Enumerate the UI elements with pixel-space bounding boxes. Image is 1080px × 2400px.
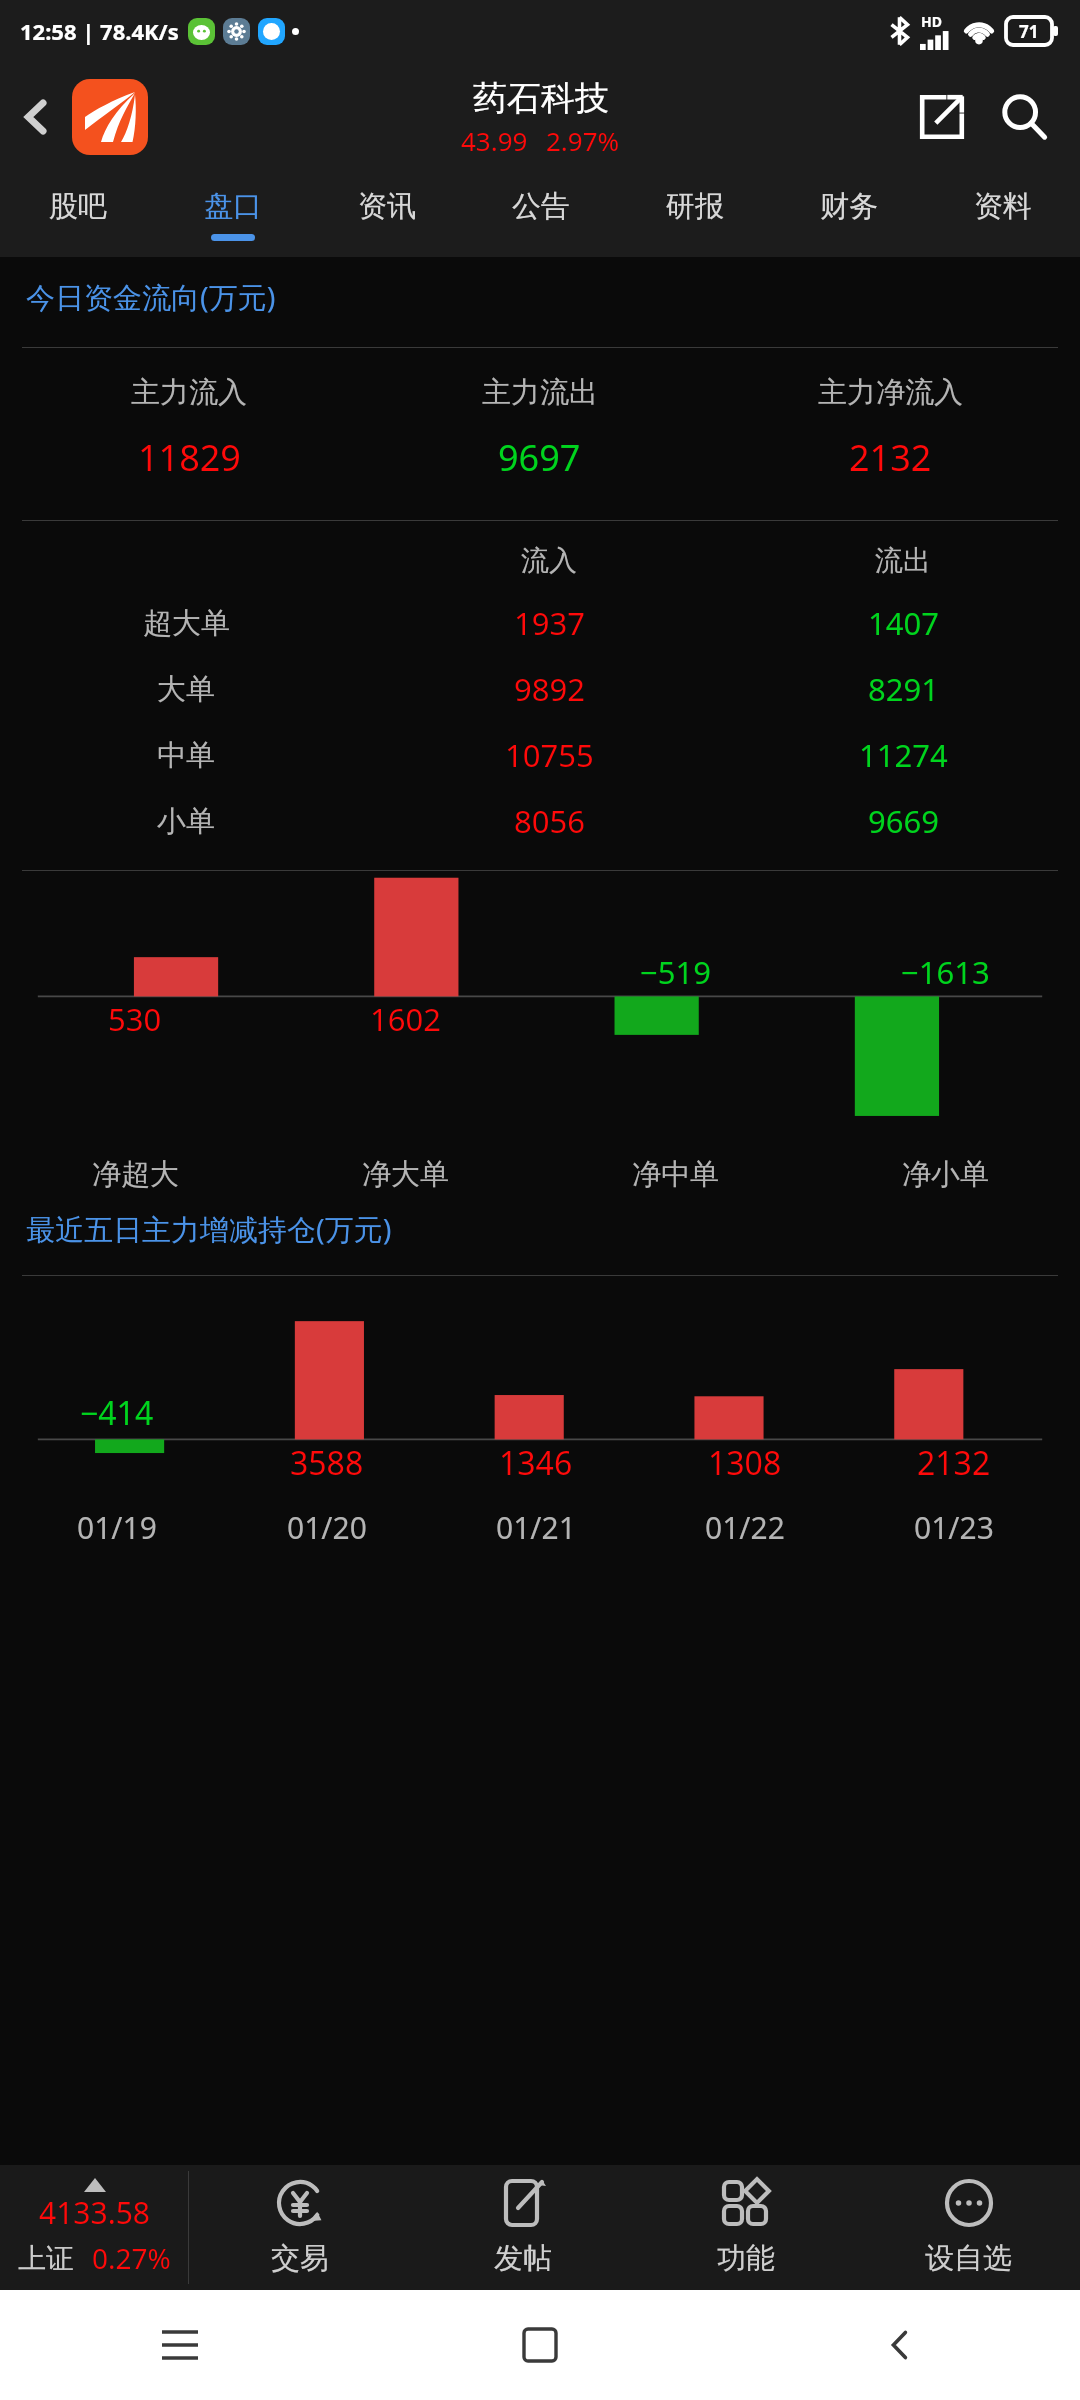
- button[interactable]: Back: [0, 81, 72, 153]
- staticText: 11274: [859, 734, 948, 776]
- button[interactable]: Share: [902, 77, 982, 157]
- staticText: 43.99: [461, 123, 528, 158]
- staticText: 公告: [512, 188, 570, 225]
- staticText: 主力流出: [482, 374, 598, 411]
- staticText: 上证: [18, 2241, 74, 2276]
- staticText: 1346: [499, 1441, 573, 1485]
- button[interactable]: 4133.58: [0, 2165, 188, 2290]
- staticText: 流入: [521, 543, 577, 578]
- staticText: 9669: [868, 800, 939, 842]
- staticText: 3588: [290, 1441, 364, 1485]
- staticText: 超大单: [143, 605, 230, 642]
- staticText: 中单: [157, 737, 215, 774]
- staticText: 8291: [868, 668, 939, 710]
- staticText: 药石科技: [473, 77, 609, 120]
- staticText: 9697: [498, 433, 581, 482]
- staticText: 01/22: [705, 1507, 785, 1548]
- staticText: 12:58 | 78.4K/s: [20, 16, 179, 46]
- staticText: 股吧: [49, 188, 107, 225]
- staticText: 最近五日主力增减持仓(万元): [26, 1209, 392, 1249]
- button[interactable]: 资讯: [310, 172, 464, 257]
- staticText: 净超大: [92, 1156, 179, 1193]
- staticText: 资料: [974, 188, 1032, 225]
- staticText: 设自选: [925, 2240, 1012, 2277]
- staticText: 今日资金流向(万元): [26, 277, 276, 317]
- staticText: 1602: [370, 998, 441, 1040]
- button[interactable]: 盘口: [155, 172, 310, 257]
- button[interactable]: 股吧: [0, 172, 155, 257]
- staticText: 11829: [138, 433, 241, 482]
- button[interactable]: App logo: [72, 79, 148, 155]
- button[interactable]: Recent apps: [0, 2290, 360, 2400]
- staticText: 发帖: [494, 2240, 552, 2277]
- button[interactable]: 资料: [926, 172, 1080, 257]
- staticText: 大单: [157, 671, 215, 708]
- staticText: 01/20: [287, 1507, 367, 1548]
- staticText: 财务: [820, 188, 878, 225]
- staticText: 资讯: [358, 188, 416, 225]
- staticText: 01/19: [77, 1507, 157, 1548]
- button[interactable]: Back: [720, 2290, 1080, 2400]
- staticText: HD: [921, 12, 942, 31]
- button[interactable]: 设自选: [857, 2165, 1080, 2290]
- staticText: 530: [108, 998, 162, 1040]
- staticText: −414: [80, 1391, 154, 1435]
- staticText: 净中单: [632, 1156, 719, 1193]
- staticText: 研报: [666, 188, 724, 225]
- staticText: 主力净流入: [818, 374, 963, 411]
- button[interactable]: 交易: [189, 2165, 411, 2290]
- staticText: 1937: [514, 602, 585, 644]
- staticText: −519: [640, 951, 711, 993]
- staticText: 10755: [505, 734, 594, 776]
- staticText: 小单: [157, 803, 215, 840]
- staticText: 4133.58: [39, 2192, 150, 2233]
- staticText: 8056: [514, 800, 585, 842]
- staticText: 净大单: [362, 1156, 449, 1193]
- staticText: 净小单: [902, 1156, 989, 1193]
- button[interactable]: 公告: [464, 172, 618, 257]
- button[interactable]: 研报: [618, 172, 772, 257]
- staticText: 2.97%: [546, 123, 620, 158]
- staticText: 盘口: [204, 188, 262, 225]
- staticText: 71: [1019, 20, 1039, 43]
- staticText: 功能: [717, 2240, 775, 2277]
- staticText: 01/23: [914, 1507, 994, 1548]
- button[interactable]: 财务: [772, 172, 926, 257]
- staticText: 2132: [849, 433, 932, 482]
- staticText: −1613: [901, 951, 990, 993]
- button[interactable]: Home: [360, 2290, 720, 2400]
- button[interactable]: 发帖: [411, 2165, 634, 2290]
- staticText: 1308: [708, 1441, 782, 1485]
- staticText: 9892: [514, 668, 585, 710]
- staticText: 01/21: [496, 1507, 576, 1548]
- staticText: 流出: [875, 543, 931, 578]
- button[interactable]: 功能: [634, 2165, 857, 2290]
- button[interactable]: Search: [982, 75, 1066, 159]
- staticText: 2132: [917, 1441, 991, 1485]
- staticText: 主力流入: [131, 374, 247, 411]
- staticText: 交易: [271, 2240, 329, 2277]
- staticText: 1407: [868, 602, 939, 644]
- staticText: 0.27%: [92, 2239, 171, 2277]
